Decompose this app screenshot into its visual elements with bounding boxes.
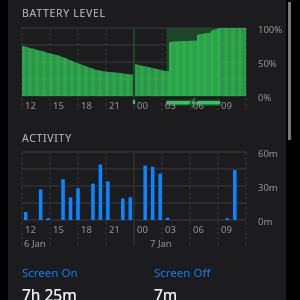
staticText: 21: [109, 223, 120, 236]
staticText: 6 Jan: [24, 237, 46, 250]
button[interactable]: Screen On: [22, 265, 154, 300]
staticText: 15: [53, 99, 64, 112]
staticText: 03: [165, 223, 176, 236]
staticText: 7h 25m: [22, 284, 77, 300]
staticText: 15: [53, 223, 64, 236]
staticText: 60m: [258, 147, 278, 160]
button[interactable]: Activity chart: [8, 149, 286, 253]
staticText: 0%: [258, 91, 272, 104]
staticText: 7m: [154, 284, 178, 300]
button[interactable]: BATTERY LEVEL: [8, 6, 286, 20]
button[interactable]: Screen Off: [154, 265, 286, 300]
staticText: 21: [109, 99, 120, 112]
staticText: 00: [137, 223, 148, 236]
staticText: 03: [165, 99, 176, 112]
staticText: 7 Jan: [150, 237, 172, 250]
staticText: 06: [193, 223, 204, 236]
staticText: Screen On: [22, 265, 78, 281]
staticText: 50%: [258, 57, 277, 70]
staticText: 0m: [258, 215, 273, 228]
staticText: 09: [221, 223, 232, 236]
staticText: 06: [193, 99, 204, 112]
staticText: 100%: [258, 23, 283, 36]
staticText: ACTIVITY: [22, 131, 72, 145]
button[interactable]: ACTIVITY: [8, 131, 286, 145]
staticText: 00: [137, 99, 148, 112]
staticText: 30m: [258, 181, 278, 194]
staticText: BATTERY LEVEL: [22, 6, 106, 20]
staticText: Screen Off: [154, 265, 211, 281]
staticText: 18: [81, 99, 92, 112]
staticText: 09: [221, 99, 232, 112]
staticText: 12: [25, 223, 36, 236]
staticText: 18: [81, 223, 92, 236]
staticText: 12: [25, 99, 36, 112]
button[interactable]: Battery level chart: [8, 25, 286, 117]
